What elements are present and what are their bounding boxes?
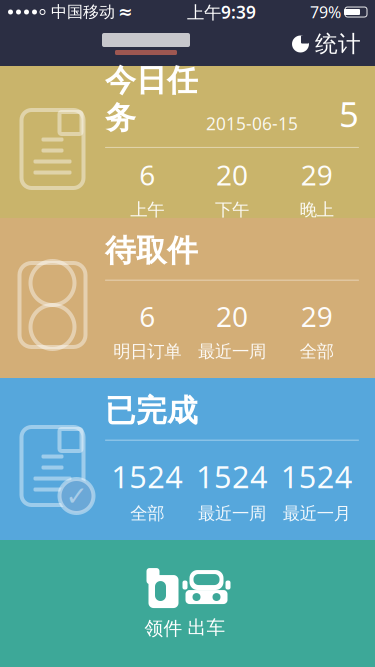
staticText: 最近一周	[198, 341, 266, 362]
staticText: 已完成	[105, 392, 198, 430]
staticText: 下午	[215, 199, 249, 220]
staticText: 上午9:39	[187, 0, 256, 23]
staticText: 领件	[144, 617, 182, 640]
button[interactable]: 领件	[144, 540, 182, 667]
button[interactable]: ✓	[0, 378, 375, 540]
staticText: 出车	[187, 616, 225, 639]
staticText: 最近一周	[198, 503, 266, 524]
staticText: 中国移动	[51, 2, 115, 22]
staticText: 今日任务	[105, 62, 198, 137]
staticText: 6	[139, 297, 155, 335]
staticText: 20	[216, 297, 248, 335]
staticText: 1524	[281, 456, 353, 497]
staticText: ✓	[65, 481, 87, 511]
button[interactable]: 统计	[292, 30, 375, 58]
staticText: 79%	[310, 1, 341, 23]
staticText: 晚上	[300, 199, 334, 220]
staticText: 1524	[111, 456, 183, 497]
staticText: 上午	[130, 199, 164, 220]
staticText: 2015-06-15	[206, 112, 298, 135]
staticText: 最近一月	[283, 503, 351, 524]
button[interactable]: 今日任务	[0, 66, 375, 218]
staticText: 统计	[315, 30, 361, 58]
staticText: 全部	[130, 503, 164, 524]
staticText: ≈	[118, 2, 133, 22]
staticText: 明日订单	[113, 341, 181, 362]
staticText: 20	[216, 156, 248, 193]
button[interactable]: 出车	[182, 540, 230, 667]
staticText: 待取件	[105, 232, 198, 270]
staticText: 29	[301, 156, 333, 193]
staticText: 29	[301, 297, 333, 335]
staticText: 5	[339, 91, 359, 137]
staticText: 全部	[300, 341, 334, 362]
staticText: 1524	[196, 456, 268, 497]
button[interactable]: 待取件	[0, 218, 375, 378]
staticText: 6	[139, 156, 155, 193]
